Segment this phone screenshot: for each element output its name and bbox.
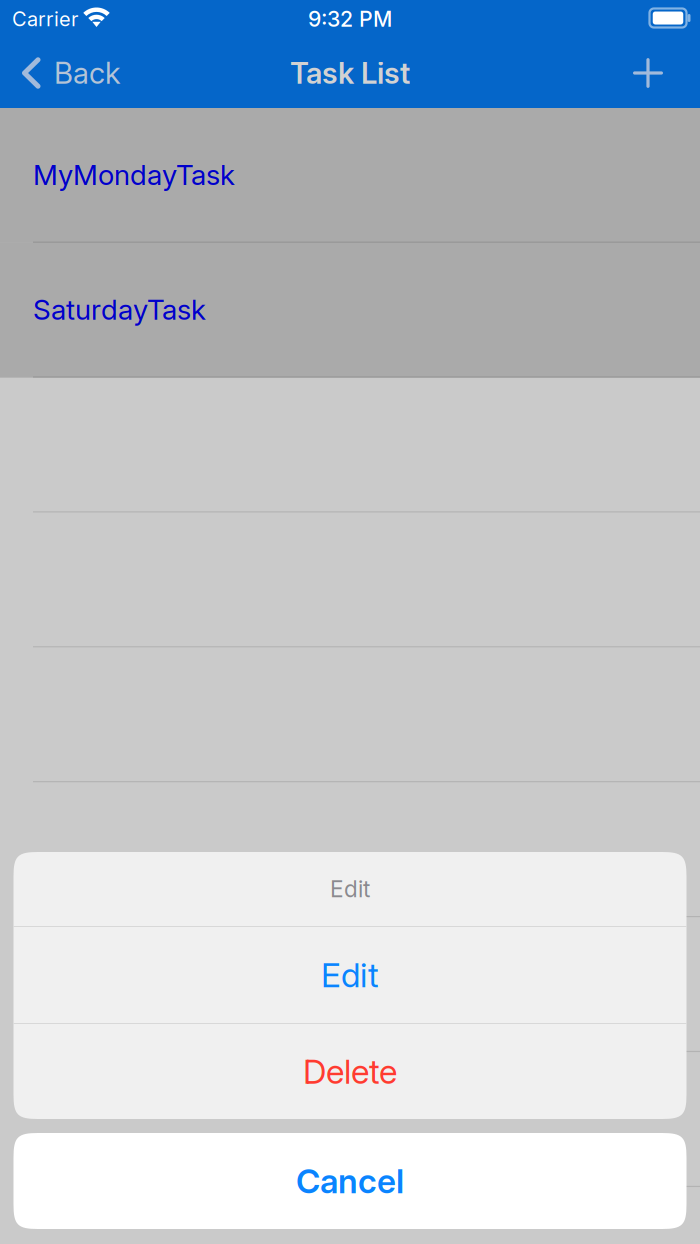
staticText: Edit [330, 875, 370, 903]
staticText: Carrier [12, 7, 78, 31]
staticText: MyMondayTask [33, 158, 235, 192]
button[interactable]: Delete [13, 1024, 686, 1119]
button[interactable]: Add task [633, 43, 700, 103]
staticText: 9:32 PM [308, 6, 392, 32]
staticText: SaturdayTask [33, 293, 206, 327]
button[interactable]: Back [0, 43, 133, 103]
staticText: Cancel [296, 1161, 404, 1201]
button[interactable]: SaturdayTask [0, 243, 700, 378]
button[interactable]: Cancel [13, 1133, 686, 1229]
staticText: Back [54, 55, 121, 91]
button[interactable]: MyMondayTask [0, 108, 700, 243]
staticText: Edit [321, 955, 379, 995]
staticText: Task List [290, 55, 410, 91]
staticText: Delete [303, 1051, 397, 1092]
button[interactable]: Edit [13, 927, 686, 1023]
